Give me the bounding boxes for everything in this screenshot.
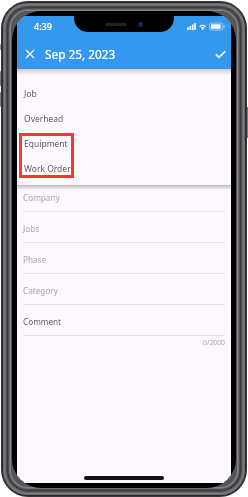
- staticText: Overhead: [24, 113, 64, 125]
- staticText: Work Order: [24, 163, 71, 175]
- staticText: Phase: [23, 254, 47, 265]
- button[interactable]: Comment: [23, 309, 225, 340]
- button[interactable]: Overhead: [17, 106, 231, 131]
- staticText: 0/2000: [23, 338, 225, 347]
- button[interactable]: Equipment: [17, 131, 231, 156]
- staticText: Category: [23, 285, 58, 296]
- staticText: 4:39: [34, 20, 52, 32]
- staticText: Comment: [23, 316, 62, 327]
- staticText: Equipment: [24, 138, 68, 150]
- button[interactable]: Company: [23, 185, 225, 216]
- staticText: Job: [24, 88, 37, 100]
- staticText: Company: [23, 192, 60, 203]
- button[interactable]: Category: [23, 278, 225, 309]
- button[interactable]: Work Order: [17, 156, 231, 181]
- staticText: Sep 25, 2023: [45, 46, 116, 62]
- button[interactable]: Close: [20, 43, 40, 63]
- button[interactable]: Job: [17, 81, 231, 106]
- button[interactable]: Confirm: [210, 43, 230, 63]
- button[interactable]: Phase: [23, 247, 225, 278]
- button[interactable]: Jobs: [23, 216, 225, 247]
- staticText: Jobs: [23, 223, 40, 234]
